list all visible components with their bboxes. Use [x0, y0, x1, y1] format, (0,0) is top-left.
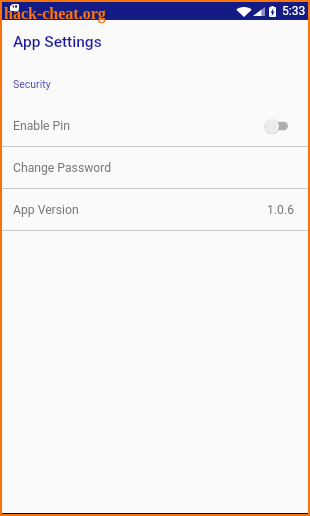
staticText: App Version — [13, 203, 79, 217]
staticText: Change Password — [13, 161, 112, 175]
other: Signal — [253, 7, 265, 16]
staticText: App Settings — [13, 33, 102, 51]
other: Battery — [269, 6, 276, 17]
button[interactable]: App Version — [2, 189, 308, 230]
button[interactable]: Enable Pin toggle, off — [265, 115, 294, 137]
staticText: 1.0.6 — [267, 203, 294, 217]
button[interactable]: Enable Pin — [2, 105, 308, 146]
staticText: hack-cheat.org — [4, 5, 106, 23]
staticText: 5:33 — [282, 4, 306, 18]
staticText: Security — [13, 78, 51, 90]
staticText: Enable Pin — [13, 119, 70, 133]
button[interactable]: Change Password — [2, 147, 308, 188]
other: Wi-Fi — [236, 6, 252, 17]
